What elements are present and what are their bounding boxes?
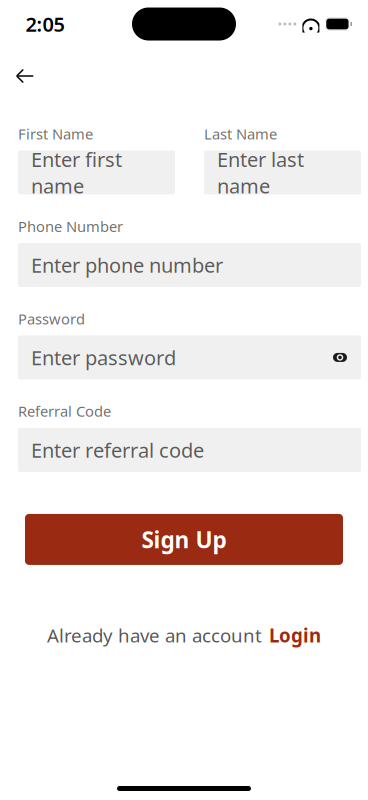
staticText: Enter last name [217, 146, 304, 199]
button[interactable]: Already have an account [37, 617, 331, 654]
staticText: Last Name [204, 124, 277, 143]
staticText: Sign Up [141, 524, 226, 554]
staticText: Referral Code [18, 401, 111, 421]
staticText: Enter phone number [31, 252, 223, 278]
staticText: Enter password [31, 344, 176, 371]
staticText: Enter first name [31, 146, 122, 199]
staticText: 2:05 [25, 11, 64, 37]
button[interactable]: Sign Up [25, 514, 343, 565]
staticText: First Name [18, 124, 93, 143]
staticText: Enter referral code [31, 437, 204, 463]
staticText: Login [269, 623, 321, 648]
button[interactable]: Back [3, 58, 47, 94]
staticText: Phone Number [18, 216, 123, 236]
staticText: Already have an account [47, 623, 262, 648]
staticText: Password [18, 309, 85, 328]
